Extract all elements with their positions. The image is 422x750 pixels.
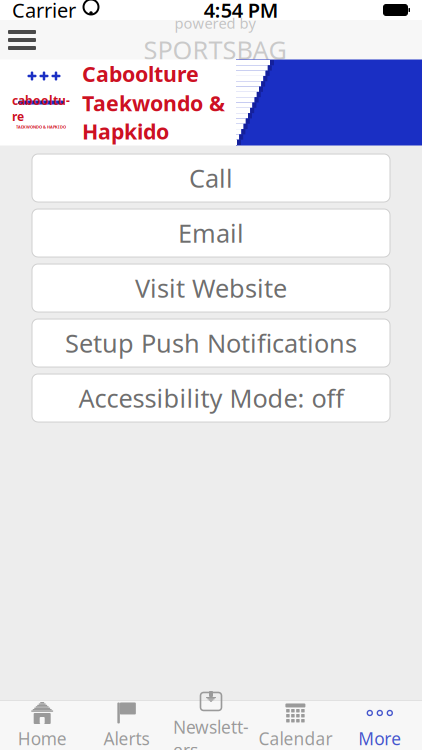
staticText: Visit Website [135,271,287,305]
button[interactable]: More [338,701,422,750]
button[interactable]: Menu [0,20,44,60]
staticText: Calendar [258,727,332,750]
staticText: Taekwondo & Hapkido [82,89,225,145]
staticText: Home [18,727,67,750]
staticText: SPORTSBAG [143,33,286,66]
staticText: Accessibility Mode: off [78,381,343,415]
button[interactable]: Visit Website [32,264,390,312]
button[interactable]: Newsletters [169,701,253,750]
staticText: Carrier [12,0,76,23]
staticText: 4:54 PM [204,0,279,23]
staticText: Setup Push Notifications [65,326,357,360]
button[interactable]: Calendar [253,701,338,750]
staticText: TAEKWONDO & HAPKIDO [16,124,66,129]
staticText: Email [178,216,244,250]
button[interactable]: Accessibility Mode: off [32,374,390,422]
button[interactable]: Call [32,154,390,202]
staticText: Alerts [104,727,150,750]
button[interactable]: Setup Push Notifications [32,319,390,367]
staticText: More [358,727,401,750]
staticText: powered by [174,13,255,33]
staticText: Newsletters [173,715,249,750]
button[interactable]: Email [32,209,390,257]
button[interactable]: Home [0,701,84,750]
staticText: Caboolture [82,59,199,88]
button[interactable]: Alerts [84,701,169,750]
staticText: Call [189,161,233,195]
staticText: caboolture [12,92,70,124]
